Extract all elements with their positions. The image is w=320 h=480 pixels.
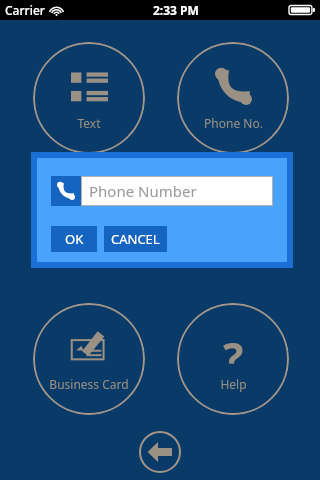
button[interactable]: Business Card [33,303,145,415]
staticText: CANCEL [111,230,160,248]
button[interactable]: Text [33,42,145,154]
staticText: Carrier [5,2,45,18]
staticText: Text [77,115,101,131]
staticText: Business Card [49,376,129,392]
staticText: 2:33 PM [153,2,199,18]
button[interactable]: OK [51,226,97,252]
staticText: Help [220,376,247,392]
staticText: Phone Number [89,181,197,201]
button[interactable]: Phone No. [177,42,289,154]
staticText: Phone No. [204,115,263,131]
button[interactable]: Phone Number [81,176,273,206]
button[interactable]: Back [138,430,182,474]
button[interactable]: ? [177,303,289,415]
staticText: ? [223,329,244,366]
staticText: OK [65,230,84,248]
button[interactable]: CANCEL [104,226,167,252]
